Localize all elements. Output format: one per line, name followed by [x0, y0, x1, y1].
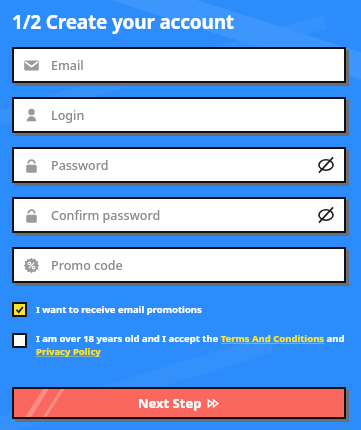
button[interactable]: Show password: [317, 206, 335, 224]
button[interactable]: Email: [14, 49, 344, 81]
button[interactable]: Receive email promotions: [14, 304, 25, 315]
staticText: 1/2 Create your account: [12, 9, 234, 35]
staticText: Password: [51, 157, 109, 174]
button[interactable]: Password: [14, 149, 344, 181]
button[interactable]: Show password: [317, 156, 335, 174]
button[interactable]: Accept terms and conditions: [12, 332, 349, 358]
button[interactable]: Confirm password: [14, 199, 344, 231]
staticText: Login: [51, 107, 85, 124]
button[interactable]: Login: [14, 99, 344, 131]
button[interactable]: Next Step: [14, 389, 344, 417]
button[interactable]: Receive email promotions: [12, 302, 349, 317]
other: Confirm password: [23, 207, 40, 224]
other: Promo code: [23, 257, 40, 274]
staticText: I am over 18 years old and I accept the …: [36, 332, 349, 358]
staticText: Promo code: [51, 257, 123, 274]
other: Login: [23, 107, 40, 124]
other: Password: [23, 157, 40, 174]
staticText: Email: [51, 57, 84, 74]
staticText: I want to receive email promotions: [36, 303, 202, 316]
staticText: Confirm password: [51, 207, 161, 224]
other: Email: [23, 57, 40, 74]
staticText: Next Step: [138, 394, 202, 412]
button[interactable]: Promo code: [14, 249, 344, 281]
